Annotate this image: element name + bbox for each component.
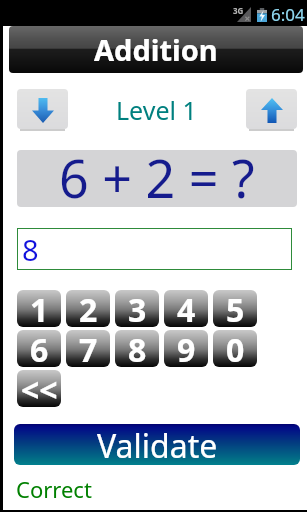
button[interactable]: 1	[17, 290, 61, 327]
staticText: Level 1	[116, 93, 197, 127]
staticText: 0	[226, 330, 245, 365]
staticText: 1	[30, 290, 49, 325]
staticText: Validate	[97, 424, 218, 465]
staticText: 8	[22, 230, 39, 269]
button[interactable]: 5	[213, 290, 257, 327]
staticText: 3G	[233, 5, 244, 16]
button[interactable]: Next level	[246, 89, 297, 131]
staticText: 7	[79, 330, 98, 365]
staticText: Correct	[16, 474, 92, 504]
staticText: 6	[30, 330, 49, 365]
button[interactable]: 6	[17, 330, 61, 367]
staticText: 4	[177, 290, 196, 325]
button[interactable]: Validate	[14, 424, 300, 465]
staticText: 6:04	[271, 3, 305, 26]
staticText: 3	[128, 290, 147, 325]
staticText: 6 + 2 = ?	[59, 150, 255, 199]
button[interactable]: 8	[17, 228, 292, 270]
button[interactable]: 0	[213, 330, 257, 367]
staticText: 9	[177, 330, 196, 365]
staticText: <<	[21, 370, 58, 405]
button[interactable]: 9	[164, 330, 208, 367]
staticText: 8	[128, 330, 147, 365]
button[interactable]: <<	[17, 370, 61, 407]
button[interactable]: 3	[115, 290, 159, 327]
staticText: Addition	[94, 30, 218, 69]
button[interactable]: 7	[66, 330, 110, 367]
button[interactable]: 8	[115, 330, 159, 367]
button[interactable]: 4	[164, 290, 208, 327]
staticText: 5	[226, 290, 245, 325]
button[interactable]: 2	[66, 290, 110, 327]
button[interactable]: Previous level	[17, 89, 68, 131]
staticText: 2	[79, 290, 98, 325]
